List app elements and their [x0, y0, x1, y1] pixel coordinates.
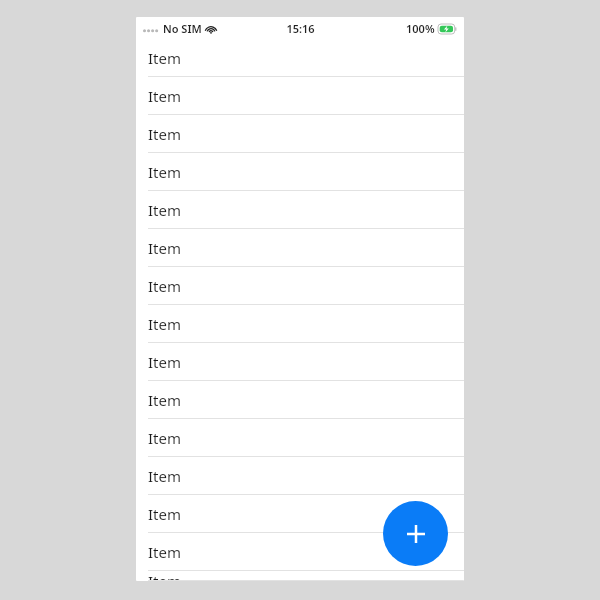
button[interactable]: Item — [136, 229, 464, 267]
staticText: Item — [148, 314, 181, 334]
button[interactable]: Item — [136, 571, 464, 581]
staticText: Item — [148, 571, 181, 581]
button[interactable]: Item — [136, 77, 464, 115]
staticText: No SIM — [163, 21, 202, 36]
staticText: Item — [148, 428, 181, 448]
staticText: Item — [148, 124, 181, 144]
button[interactable]: Item — [136, 39, 464, 77]
staticText: Item — [148, 504, 181, 524]
staticText: Item — [148, 276, 181, 296]
staticText: Item — [148, 352, 181, 372]
staticText: Item — [148, 86, 181, 106]
staticText: 15:16 — [286, 21, 315, 36]
staticText: Item — [148, 390, 181, 410]
staticText: Item — [148, 48, 181, 68]
button[interactable]: Add — [383, 501, 448, 566]
staticText: Item — [148, 238, 181, 258]
button[interactable]: Item — [136, 533, 464, 571]
staticText: Item — [148, 162, 181, 182]
button[interactable]: Item — [136, 381, 464, 419]
staticText: 100% — [406, 21, 435, 36]
button[interactable]: Item — [136, 191, 464, 229]
button[interactable]: Item — [136, 153, 464, 191]
button[interactable]: Item — [136, 343, 464, 381]
button[interactable]: Item — [136, 457, 464, 495]
button[interactable]: Item — [136, 305, 464, 343]
staticText: Item — [148, 466, 181, 486]
button[interactable]: Item — [136, 267, 464, 305]
staticText: Item — [148, 200, 181, 220]
button[interactable]: Item — [136, 419, 464, 457]
staticText: Item — [148, 542, 181, 562]
button[interactable]: Item — [136, 495, 464, 533]
button[interactable]: Item — [136, 115, 464, 153]
